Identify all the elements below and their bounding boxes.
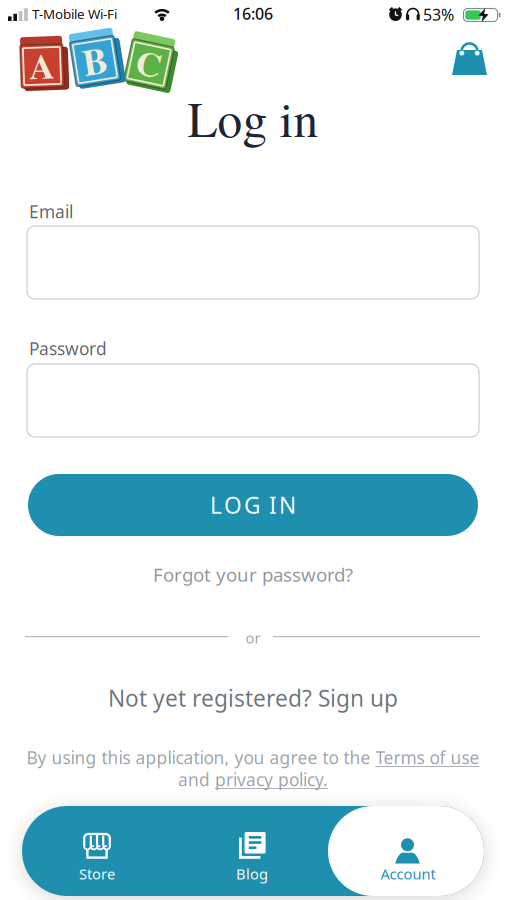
staticText: Blog bbox=[236, 864, 268, 883]
button[interactable]: Not yet registered? Sign up bbox=[0, 683, 506, 713]
staticText: L O G I N bbox=[210, 490, 296, 520]
staticText: 53% bbox=[423, 4, 454, 25]
staticText: Log in bbox=[187, 85, 318, 151]
button[interactable]: Blog bbox=[172, 806, 332, 896]
button[interactable]: Forgot your password? bbox=[0, 562, 506, 587]
staticText: Terms of use bbox=[375, 746, 479, 769]
staticText: Email bbox=[29, 200, 73, 223]
staticText: and bbox=[178, 768, 215, 791]
staticText: Store bbox=[79, 864, 115, 883]
staticText: A bbox=[29, 39, 55, 91]
button[interactable]: L O G I N bbox=[28, 474, 478, 536]
staticText: privacy policy. bbox=[215, 768, 328, 791]
staticText: Forgot your password? bbox=[153, 562, 353, 587]
staticText: By using this application, you agree to … bbox=[26, 746, 375, 769]
button[interactable]: Cart bbox=[451, 40, 488, 76]
button[interactable]: privacy policy. bbox=[215, 768, 328, 791]
staticText: 16:06 bbox=[233, 3, 273, 24]
staticText: C bbox=[136, 37, 162, 89]
staticText: Password bbox=[29, 337, 107, 360]
staticText: B bbox=[82, 33, 107, 87]
button[interactable]: Terms of use bbox=[375, 746, 479, 769]
button[interactable]: Store bbox=[22, 806, 172, 896]
staticText: Not yet registered? Sign up bbox=[108, 683, 398, 713]
button[interactable]: Account bbox=[332, 806, 484, 896]
staticText: Account bbox=[380, 864, 435, 883]
staticText: or bbox=[245, 628, 260, 647]
staticText: T-Mobile Wi-Fi bbox=[32, 5, 117, 23]
